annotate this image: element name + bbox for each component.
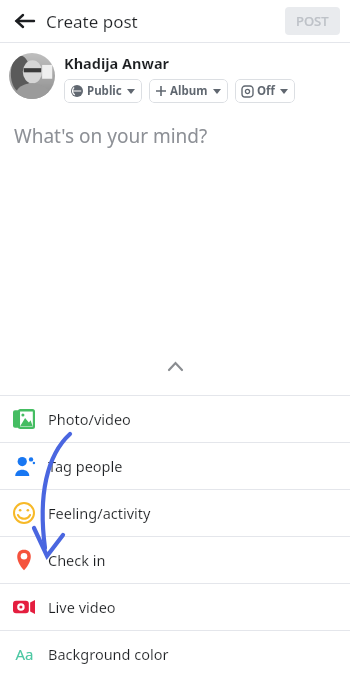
button[interactable]: Back xyxy=(10,6,40,36)
staticText: Background color xyxy=(48,644,169,664)
button[interactable]: Collapse xyxy=(158,349,192,383)
button[interactable]: Check in xyxy=(0,537,350,583)
staticText: Off xyxy=(257,83,275,99)
button[interactable]: Feeling/activity xyxy=(0,490,350,536)
button[interactable]: POST xyxy=(285,7,340,35)
button[interactable]: Public xyxy=(64,79,142,103)
button[interactable]: Photo/video xyxy=(0,396,350,442)
staticText: Feeling/activity xyxy=(48,503,151,523)
button[interactable]: Profile photo xyxy=(9,53,55,99)
staticText: Public xyxy=(87,83,122,99)
staticText: Check in xyxy=(48,550,106,570)
staticText: POST xyxy=(296,12,329,30)
staticText: Aa xyxy=(15,644,34,664)
button[interactable]: Live video xyxy=(0,584,350,630)
staticText: Photo/video xyxy=(48,409,131,429)
staticText: Album xyxy=(170,83,208,99)
staticText: Create post xyxy=(46,10,138,33)
staticText: Live video xyxy=(48,597,116,617)
staticText: Khadija Anwar xyxy=(64,53,170,73)
button[interactable]: Aa xyxy=(0,631,350,677)
button[interactable]: Album xyxy=(149,79,228,103)
staticText: What's on your mind? xyxy=(14,123,208,149)
button[interactable]: Off xyxy=(235,79,295,103)
staticText: Tag people xyxy=(48,456,123,476)
button[interactable]: Tag people xyxy=(0,443,350,489)
